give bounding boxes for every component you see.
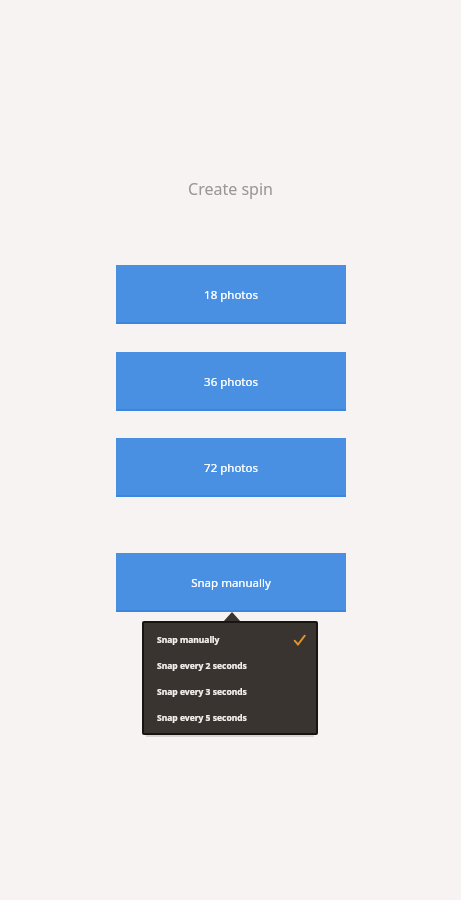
staticText: Snap manually: [191, 575, 271, 591]
button[interactable]: Snap every 2 seconds: [144, 653, 316, 679]
staticText: Snap every 5 seconds: [157, 712, 247, 724]
staticText: Snap every 2 seconds: [157, 660, 247, 672]
staticText: Create spin: [188, 178, 273, 200]
button[interactable]: Snap every 5 seconds: [144, 705, 316, 731]
button[interactable]: Snap manually: [116, 553, 346, 612]
button[interactable]: Snap every 3 seconds: [144, 679, 316, 705]
staticText: Snap manually: [157, 634, 220, 646]
button[interactable]: 18 photos: [116, 265, 346, 324]
button[interactable]: 72 photos: [116, 438, 346, 497]
button[interactable]: Snap manually: [144, 627, 316, 653]
staticText: 18 photos: [204, 287, 258, 303]
staticText: 72 photos: [204, 460, 258, 476]
staticText: Snap every 3 seconds: [157, 686, 247, 698]
other: Selected: [294, 635, 305, 646]
button[interactable]: 36 photos: [116, 352, 346, 411]
staticText: 36 photos: [204, 374, 258, 390]
